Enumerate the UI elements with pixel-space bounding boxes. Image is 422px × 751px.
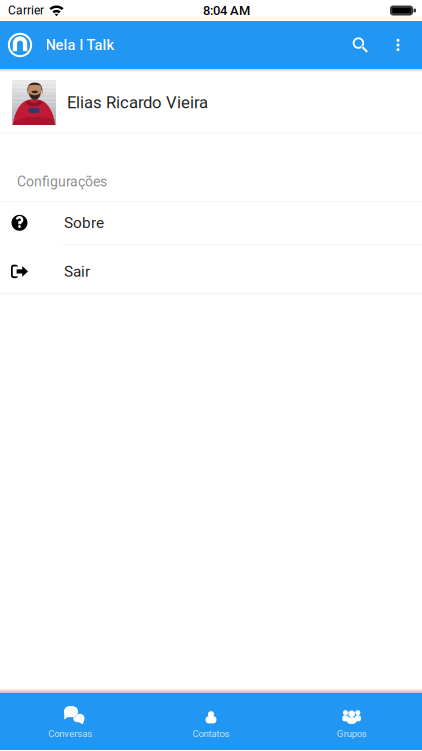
staticText: Sobre bbox=[64, 214, 104, 232]
staticText: Elias Ricardo Vieira bbox=[67, 93, 208, 112]
staticText: Carrier bbox=[8, 3, 44, 18]
button[interactable]: Contatos bbox=[141, 694, 281, 749]
staticText: Conversas bbox=[48, 728, 92, 739]
staticText: 8:04 AM bbox=[203, 3, 250, 18]
button[interactable]: Sair bbox=[0, 245, 422, 294]
staticText: Grupos bbox=[337, 728, 367, 739]
staticText: Configurações bbox=[17, 173, 107, 190]
staticText: Nela l Talk bbox=[45, 36, 114, 54]
staticText: Sair bbox=[64, 262, 90, 280]
button[interactable]: Sobre bbox=[0, 202, 422, 245]
button[interactable]: More options bbox=[379, 25, 417, 65]
button[interactable]: Grupos bbox=[281, 694, 422, 749]
button[interactable]: Elias Ricardo Vieira bbox=[0, 72, 422, 133]
staticText: Contatos bbox=[192, 728, 229, 739]
button[interactable]: Conversas bbox=[0, 694, 141, 749]
button[interactable]: Search bbox=[341, 26, 379, 64]
